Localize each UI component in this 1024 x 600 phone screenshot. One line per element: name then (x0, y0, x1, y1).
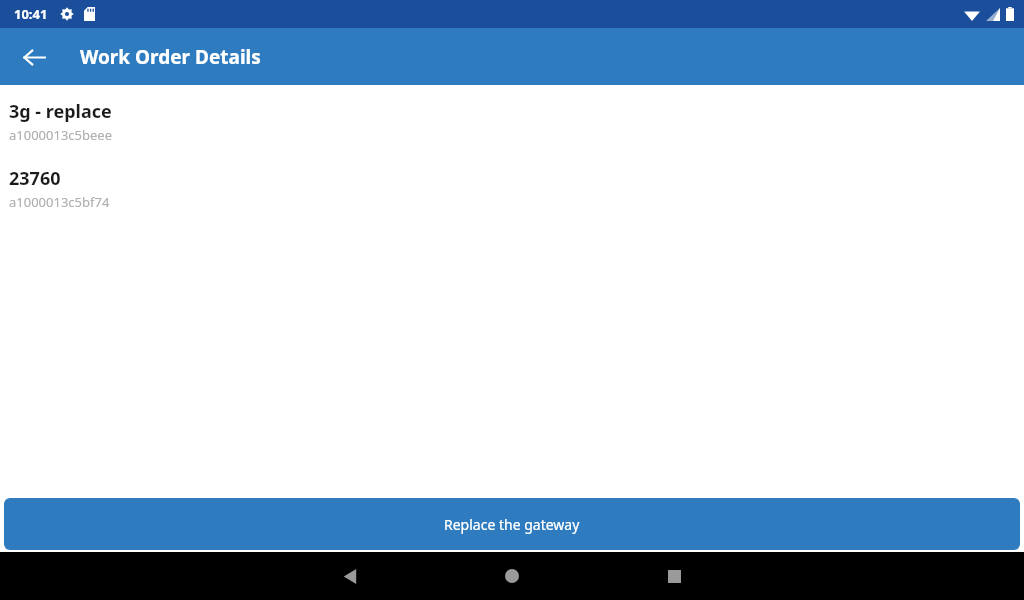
button[interactable]: 3g - replace (0, 99, 1024, 144)
staticText: 3g - replace (9, 99, 112, 124)
button[interactable]: Replace the gateway (4, 498, 1020, 550)
staticText: Work Order Details (80, 44, 261, 70)
button[interactable]: Home (495, 559, 529, 593)
button[interactable]: Back (333, 559, 367, 593)
button[interactable]: Recent apps (657, 559, 691, 593)
staticText: 23760 (9, 166, 61, 191)
button[interactable]: Back (10, 33, 58, 81)
staticText: 10:41 (14, 5, 48, 23)
staticText: a1000013c5bf74 (9, 193, 110, 211)
staticText: Replace the gateway (444, 515, 580, 534)
staticText: a1000013c5beee (9, 126, 113, 144)
button[interactable]: 23760 (0, 166, 1024, 211)
